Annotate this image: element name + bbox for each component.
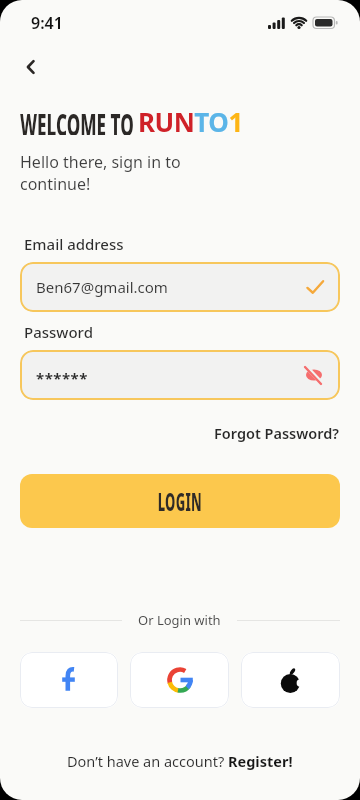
- staticText: Hello there, sign in to continue!: [20, 151, 181, 195]
- button[interactable]: [241, 652, 340, 708]
- button[interactable]: Don’t have an account? Register!: [20, 751, 340, 771]
- staticText: Don’t have an account? Register!: [67, 751, 293, 771]
- button[interactable]: [20, 652, 118, 708]
- button[interactable]: Forgot Password?: [214, 423, 340, 443]
- staticText: Password: [24, 322, 93, 342]
- staticText: Ben67@gmail.com: [36, 277, 306, 297]
- staticText: Email address: [24, 234, 124, 254]
- staticText: Or Login with: [138, 611, 221, 629]
- button[interactable]: LOGIN: [20, 474, 340, 528]
- button[interactable]: Ben67@gmail.com: [20, 262, 340, 312]
- button[interactable]: ******: [20, 350, 340, 400]
- staticText: WELCOME TO: [20, 104, 134, 135]
- staticText: ******: [36, 368, 304, 388]
- button[interactable]: [20, 48, 60, 88]
- button[interactable]: [130, 652, 229, 708]
- staticText: RUNTO1: [138, 104, 243, 135]
- staticText: LOGIN: [158, 484, 202, 518]
- staticText: 9:41: [31, 12, 63, 34]
